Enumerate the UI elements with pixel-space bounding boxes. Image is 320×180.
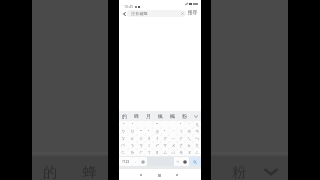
- button[interactable]: Recents: [168, 171, 186, 179]
- button[interactable]: ㄖ: [153, 149, 161, 156]
- button[interactable]: ㄒ: [145, 149, 153, 156]
- button[interactable]: ㄏ: [137, 149, 145, 156]
- staticText: 蜂: [134, 113, 139, 119]
- button[interactable]: ㄦ: [193, 121, 201, 128]
- button[interactable]: ㄣ: [193, 135, 201, 142]
- button[interactable]: ㄡ: [185, 149, 193, 156]
- button[interactable]: ˇ: [137, 128, 145, 135]
- button[interactable]: Voice input: [181, 157, 189, 166]
- button[interactable]: ，: [132, 157, 139, 166]
- staticText: ˙: [189, 122, 190, 128]
- staticText: ㄍ: [139, 136, 144, 142]
- button[interactable]: ㄑ: [145, 142, 153, 149]
- button[interactable]: ㄅ: [119, 128, 128, 135]
- staticText: 的: [43, 164, 57, 180]
- button[interactable]: ㄠ: [185, 142, 193, 149]
- button[interactable]: ㄉ: [128, 128, 137, 135]
- button[interactable]: ㄌ: [128, 149, 137, 156]
- button[interactable]: ˉ: [119, 121, 128, 128]
- button[interactable]: ㄧ: [169, 135, 177, 142]
- button[interactable]: ㄟ: [185, 135, 193, 142]
- button[interactable]: ㄊ: [128, 135, 137, 142]
- staticText: ㄙ: [163, 150, 168, 156]
- staticText: ˇ: [156, 122, 158, 128]
- button[interactable]: 粉: [178, 111, 190, 121]
- button[interactable]: ㄚ: [177, 128, 185, 135]
- staticText: 楓: [170, 113, 175, 119]
- staticText: ㄅ: [121, 129, 126, 135]
- button[interactable]: ˊ: [161, 128, 169, 135]
- button[interactable]: ㄇ: [119, 142, 128, 149]
- button[interactable]: ㄗ: [161, 135, 169, 142]
- button[interactable]: 蜂: [130, 111, 142, 121]
- button[interactable]: ㄋ: [128, 142, 137, 149]
- button[interactable]: ?123: [119, 157, 132, 166]
- button[interactable]: ㄅ: [174, 157, 181, 166]
- button[interactable]: ˊ: [128, 121, 137, 128]
- button[interactable]: ㄢ: [193, 128, 201, 135]
- staticText: ㄏ: [139, 150, 144, 156]
- button[interactable]: ˇ: [153, 121, 161, 128]
- button[interactable]: Emoji: [139, 157, 147, 166]
- button[interactable]: ㄛ: [177, 135, 185, 142]
- staticText: ㄦ: [195, 122, 200, 128]
- button[interactable]: ㄕ: [153, 142, 161, 149]
- button[interactable]: ㄜ: [177, 142, 185, 149]
- staticText: ㄋ: [130, 143, 135, 149]
- staticText: ㄨ: [171, 143, 176, 149]
- button[interactable]: ㄔ: [153, 135, 161, 142]
- button[interactable]: ㄝ: [177, 149, 185, 156]
- button[interactable]: 注音鍵盤: [127, 10, 186, 17]
- staticText: ㄟ: [187, 136, 192, 142]
- button[interactable]: ㄎ: [137, 142, 145, 149]
- staticText: ㄝ: [179, 150, 184, 156]
- button[interactable]: ˋ: [177, 121, 185, 128]
- staticText: ˉ: [123, 122, 125, 128]
- staticText: ˇ: [140, 129, 142, 135]
- button[interactable]: ㄥ: [193, 149, 201, 156]
- button[interactable]: ㄆ: [119, 135, 128, 142]
- button[interactable]: ˙: [169, 128, 177, 135]
- staticText: ㄈ: [121, 150, 126, 156]
- staticText: ㄌ: [130, 150, 135, 156]
- button[interactable]: ㄙ: [161, 149, 169, 156]
- button[interactable]: ㄘ: [161, 142, 169, 149]
- button[interactable]: ㄤ: [193, 142, 201, 149]
- staticText: ㄧ: [171, 136, 176, 142]
- button[interactable]: ㄞ: [185, 128, 193, 135]
- button[interactable]: Expand candidates: [190, 111, 201, 121]
- staticText: ㄕ: [155, 143, 160, 149]
- staticText: ㄛ: [179, 136, 184, 142]
- button[interactable]: ˙: [185, 121, 193, 128]
- button[interactable]: ㄐ: [145, 135, 153, 142]
- button[interactable]: 瘋: [154, 111, 166, 121]
- button[interactable]: 楓: [166, 111, 178, 121]
- staticText: ?123: [122, 159, 130, 164]
- button[interactable]: 的: [119, 111, 130, 121]
- staticText: ˋ: [148, 129, 150, 135]
- button[interactable]: 搜尋: [187, 9, 199, 17]
- staticText: 蜂: [83, 164, 97, 180]
- button[interactable]: Search: [189, 157, 201, 166]
- staticText: ㄎ: [139, 143, 144, 149]
- staticText: ㄢ: [195, 129, 200, 135]
- staticText: ㄇ: [121, 143, 126, 149]
- button[interactable]: ˋ: [145, 128, 153, 135]
- staticText: ˋ: [180, 122, 182, 128]
- staticText: ㄥ: [195, 150, 200, 156]
- button[interactable]: ㄍ: [137, 135, 145, 142]
- button[interactable]: ㄓ: [153, 128, 161, 135]
- button[interactable]: 月: [142, 111, 154, 121]
- button[interactable]: ㄈ: [119, 149, 128, 156]
- button[interactable]: Home: [150, 171, 168, 179]
- button[interactable]: ㄨ: [169, 142, 177, 149]
- button[interactable]: Back: [132, 171, 150, 179]
- button[interactable]: ㄩ: [169, 149, 177, 156]
- button[interactable]: Back: [120, 10, 128, 18]
- staticText: ㄤ: [195, 143, 200, 149]
